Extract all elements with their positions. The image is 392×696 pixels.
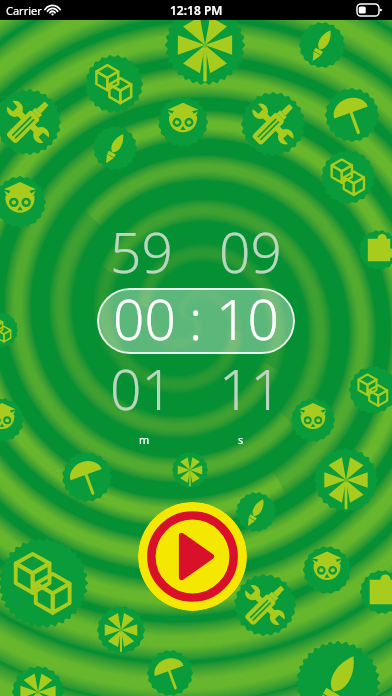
button[interactable]: Start timer xyxy=(138,502,247,611)
staticText: 12:18 PM xyxy=(170,2,223,18)
staticText: Carrier xyxy=(6,3,42,18)
staticText: 01 xyxy=(110,351,173,426)
staticText: 10 xyxy=(216,281,279,356)
staticText: : xyxy=(189,281,203,356)
staticText: 09 xyxy=(219,214,282,289)
staticText: s xyxy=(238,432,244,447)
button[interactable] xyxy=(97,288,295,354)
staticText: 00 xyxy=(113,281,176,356)
staticText: 59 xyxy=(110,214,173,289)
staticText: m xyxy=(139,432,150,447)
staticText: 11 xyxy=(219,351,282,426)
